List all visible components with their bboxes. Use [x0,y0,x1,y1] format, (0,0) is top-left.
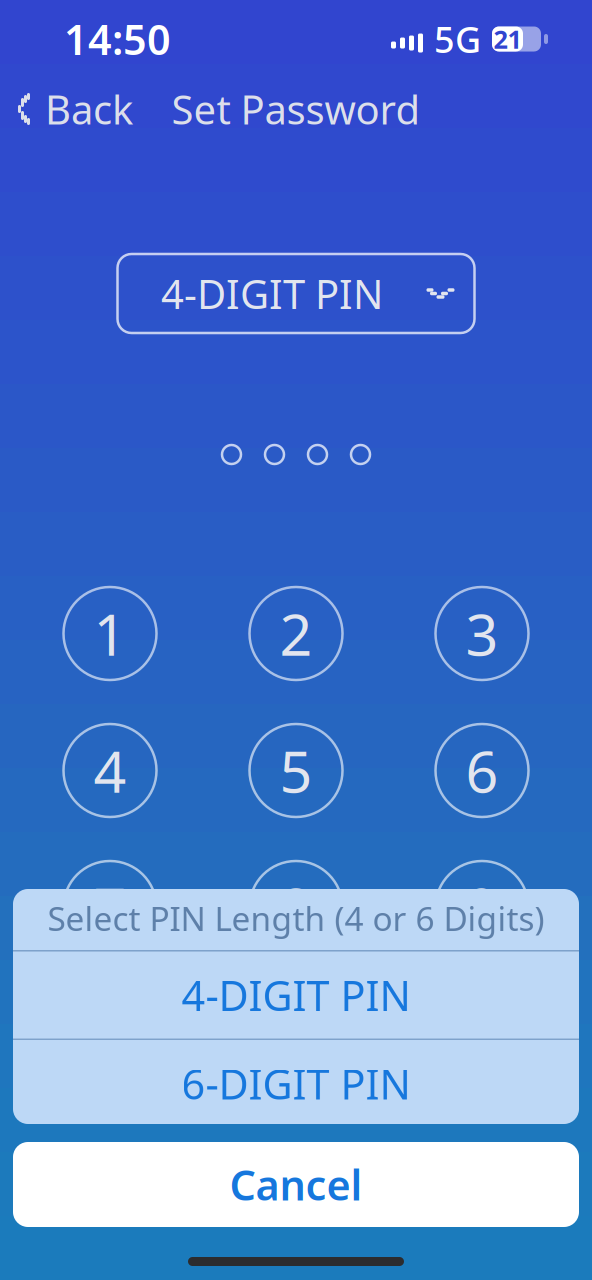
staticText: 4-DIGIT PIN [181,968,410,1022]
staticText: 9 [465,869,498,945]
button[interactable]: 9 [435,861,528,954]
button[interactable]: 8 [249,861,342,954]
staticText: 6 [465,732,498,808]
button[interactable]: 2 [249,587,342,680]
button[interactable]: 4-DIGIT PIN [13,951,579,1038]
staticText: Cancel [229,1157,362,1212]
staticText: Back [45,82,133,135]
button[interactable]: 4-DIGIT PIN [117,254,474,333]
staticText: 14:50 [64,12,171,66]
staticText: 5 [279,732,312,808]
button[interactable]: 5 [249,724,342,817]
button[interactable]: Cancel [13,1142,579,1227]
staticText: 3 [465,595,498,671]
button[interactable]: 4 [63,724,156,817]
staticText: 4-DIGIT PIN [161,267,383,320]
staticText: Select PIN Length (4 or 6 Digits) [47,896,544,940]
button[interactable]: 1 [63,587,156,680]
staticText: 5G [434,15,481,63]
staticText: 21 [493,22,521,56]
staticText: 7 [93,869,126,945]
staticText: 1 [93,595,126,671]
staticText: 8 [279,869,312,945]
staticText: 6-DIGIT PIN [181,1056,410,1111]
button[interactable]: 6-DIGIT PIN [13,1040,579,1127]
button[interactable]: Back [0,76,149,141]
button[interactable]: 3 [435,587,528,680]
staticText: 2 [279,595,312,671]
button[interactable]: 6 [435,724,528,817]
staticText: Set Password [171,82,420,135]
button[interactable]: 7 [63,861,156,954]
staticText: 4 [93,732,126,808]
